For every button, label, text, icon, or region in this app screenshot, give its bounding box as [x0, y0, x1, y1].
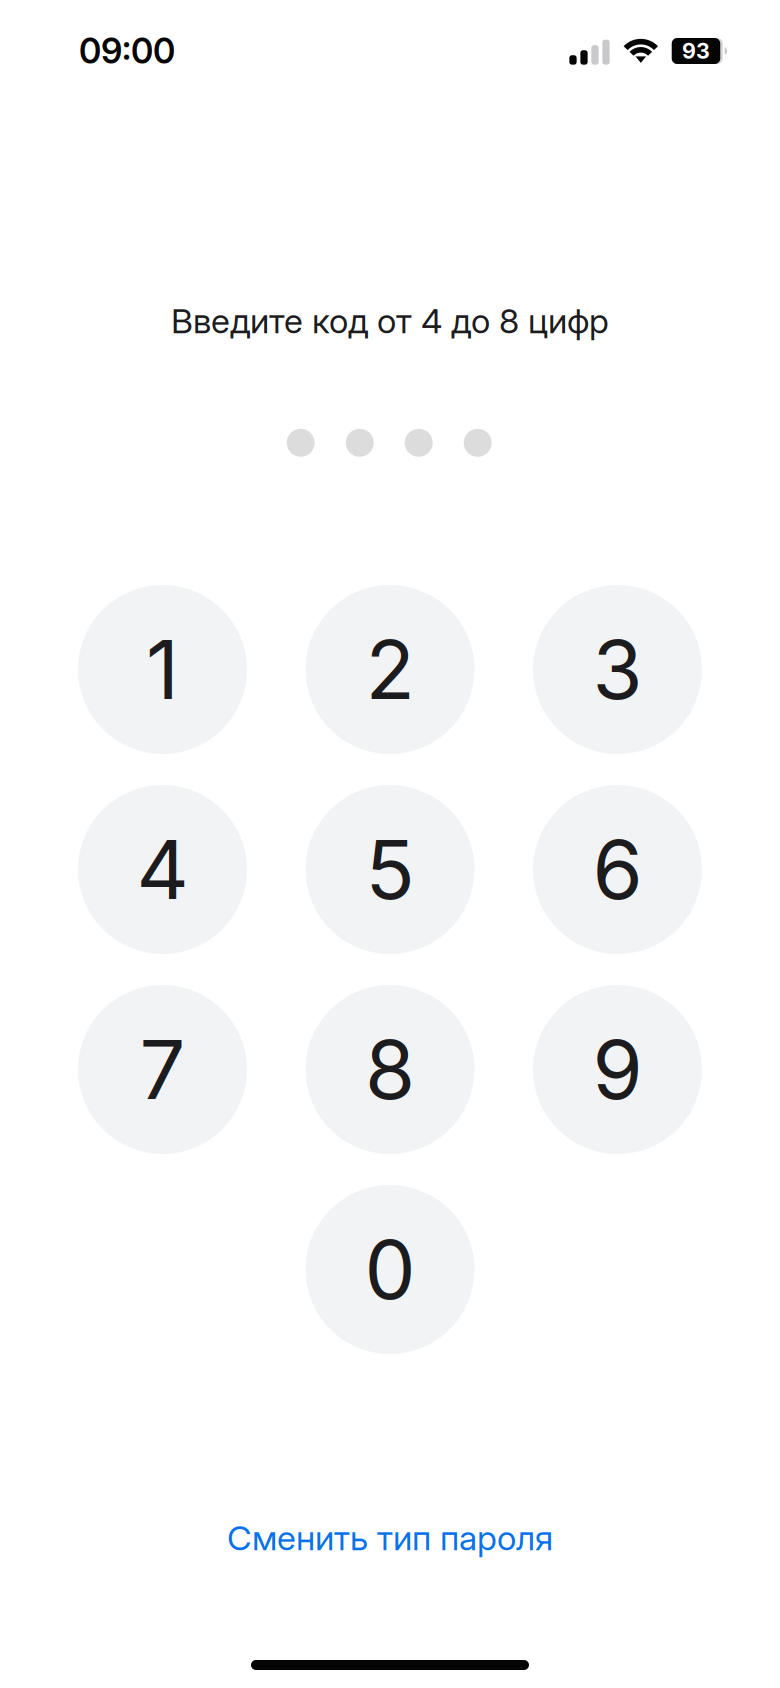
button[interactable]: 5 — [305, 785, 474, 954]
staticText: Сменить тип пароля — [227, 1517, 553, 1558]
button[interactable]: Сменить тип пароля — [180, 1510, 600, 1566]
button[interactable]: 8 — [305, 985, 474, 1154]
staticText: 5 — [365, 820, 414, 918]
staticText: 93 — [682, 38, 710, 64]
button[interactable]: 2 — [305, 585, 474, 754]
staticText: 6 — [592, 820, 642, 918]
staticText: 09:00 — [79, 30, 175, 72]
staticText: Введите код от 4 до 8 цифр — [171, 300, 609, 341]
button[interactable]: 6 — [533, 785, 702, 954]
button[interactable]: 0 — [305, 1185, 474, 1354]
staticText: 1 — [146, 620, 179, 718]
staticText: 2 — [365, 620, 414, 718]
staticText: 3 — [592, 620, 642, 718]
button[interactable]: 7 — [78, 985, 247, 1154]
button[interactable]: 3 — [533, 585, 702, 754]
staticText: 0 — [364, 1220, 415, 1318]
staticText: 9 — [592, 1020, 642, 1118]
staticText: 4 — [136, 820, 188, 918]
staticText: 8 — [365, 1020, 415, 1118]
button[interactable]: 1 — [78, 585, 247, 754]
button[interactable]: 9 — [533, 985, 702, 1154]
staticText: 7 — [139, 1020, 185, 1118]
button[interactable]: 4 — [78, 785, 247, 954]
